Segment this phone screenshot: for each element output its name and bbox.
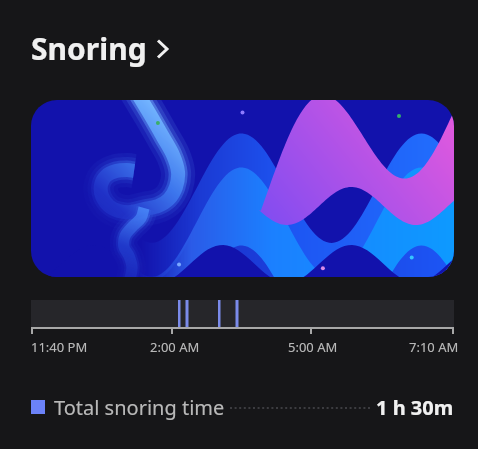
button[interactable]: Total snoring time (31, 394, 454, 420)
staticText: 7:10 AM (409, 338, 459, 356)
staticText: Total snoring time (54, 394, 225, 420)
staticText: 1 h 30m (376, 394, 454, 420)
staticText: 2:00 AM (150, 338, 200, 356)
staticText: 5:00 AM (288, 338, 338, 356)
staticText: 11:40 PM (31, 338, 88, 356)
staticText: Snoring (31, 28, 147, 69)
button[interactable]: Snoring (31, 28, 175, 73)
